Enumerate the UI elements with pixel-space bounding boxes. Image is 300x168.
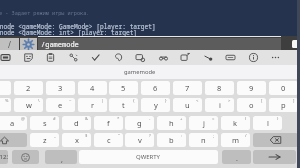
button[interactable]: Shift [0,133,27,147]
staticText: m [232,135,240,145]
button[interactable]: t [109,98,138,112]
button[interactable]: v [125,133,154,147]
button[interactable]: 4 [78,81,107,95]
button[interactable]: j [189,116,218,130]
button[interactable]: More [266,50,284,65]
button[interactable]: 3 [46,81,75,95]
button[interactable]: Clipboard [41,50,59,65]
staticText: ? [149,133,151,139]
staticText: c [107,135,111,145]
staticText: z [43,135,47,145]
button[interactable]: 9 [237,81,266,95]
button[interactable]: / [0,38,19,51]
button[interactable]: Car mode [154,50,172,65]
staticText: = [212,116,215,122]
button[interactable]: w [14,98,43,112]
button[interactable]: p [269,98,298,112]
button[interactable]: Settings [20,38,37,51]
button[interactable]: b [157,133,186,147]
button[interactable]: 5 [109,81,138,95]
button[interactable]: m [221,133,250,147]
staticText: 9 [249,83,254,93]
button[interactable]: n [189,133,218,147]
button[interactable]: Backspace [253,133,298,147]
staticText: r [91,100,95,110]
button[interactable]: QWERTY [79,150,218,164]
button[interactable]: q [0,98,11,112]
staticText: o [249,100,254,110]
button[interactable]: Draw [199,50,217,65]
staticText: ; [213,133,215,139]
staticText: l [267,118,269,128]
staticText: n [201,135,206,145]
button[interactable]: GIF [0,50,14,65]
button[interactable]: d [62,116,91,130]
staticText: @ [21,116,25,122]
button[interactable]: . [222,150,251,164]
staticText: ?123 [0,153,8,161]
staticText: t [122,100,125,110]
staticText: \ [38,98,40,104]
button[interactable]: 7 [173,81,202,95]
button[interactable]: gamemode [112,65,168,79]
button[interactable]: l [253,116,282,130]
button[interactable]: Settings [131,50,149,65]
staticText: / [8,39,11,50]
staticText: $ [85,133,88,139]
staticText: + [180,116,183,122]
button[interactable]: e [46,98,75,112]
button[interactable]: Stickers [19,50,37,65]
button[interactable]: c [94,133,123,147]
button[interactable]: Translate [64,50,82,65]
staticText: enode <gameMode: GameMode> [player: targ… [0,22,156,30]
button[interactable]: Spell check [86,50,104,65]
staticText: k [233,118,238,128]
staticText: h [169,118,174,128]
button[interactable]: ?123 [0,150,8,164]
button[interactable]: 6 [141,81,170,95]
button[interactable]: Enter [253,150,296,164]
button[interactable]: s [30,116,59,130]
staticText: % [5,98,9,104]
button[interactable]: /gamemode [38,38,281,51]
button[interactable]: Themes [109,50,127,65]
staticText: : [181,133,183,139]
staticText: i [219,100,221,110]
button[interactable]: x [62,133,91,147]
button[interactable]: Share [176,50,194,65]
button[interactable]: o [237,98,266,112]
button[interactable]: a [0,116,27,130]
staticText: a [10,118,15,128]
staticText: } [165,98,167,104]
button[interactable]: Send [292,40,300,48]
button[interactable]: y [141,98,170,112]
button[interactable]: k [221,116,250,130]
staticText: , [61,155,63,164]
button[interactable]: z [30,133,59,147]
button[interactable]: h [157,116,186,130]
staticText: y [154,100,158,110]
staticText: x [75,135,79,145]
button[interactable]: Info [244,50,262,65]
staticText: u [185,100,190,110]
button[interactable]: f [94,116,123,130]
button[interactable]: r [78,98,107,112]
staticText: 7 [185,83,190,93]
button[interactable]: 0 [269,81,298,95]
button[interactable]: g [125,116,154,130]
button[interactable]: Text editing [221,50,239,65]
staticText: QWERTY [136,153,161,161]
button[interactable]: 8 [205,81,234,95]
button[interactable]: u [173,98,202,112]
button[interactable]: 2 [14,81,43,95]
staticText: * [117,116,120,122]
button[interactable]: Emoji [12,150,39,164]
staticText: & [85,116,89,122]
staticText: 5 [121,83,126,93]
button[interactable]: , [45,150,77,164]
staticText: 2 [26,83,31,93]
staticText: /gamemode [41,40,79,50]
button[interactable]: i [205,98,234,112]
staticText: 0 [281,83,286,93]
